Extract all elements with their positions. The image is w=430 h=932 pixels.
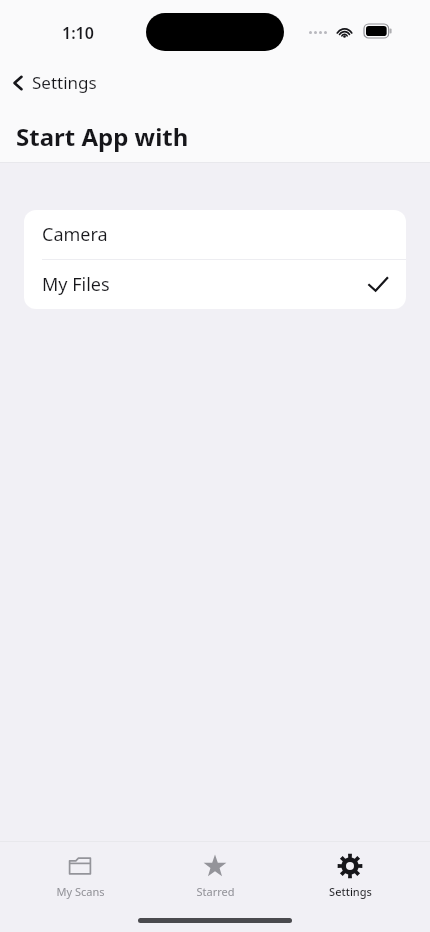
- button[interactable]: Camera: [24, 210, 406, 259]
- button[interactable]: Settings: [295, 849, 405, 903]
- staticText: My Scans: [56, 884, 105, 899]
- button[interactable]: My Scans: [25, 849, 135, 903]
- staticText: Start App with: [16, 120, 189, 153]
- staticText: 1:10: [62, 22, 94, 44]
- staticText: Starred: [196, 884, 235, 899]
- staticText: My Files: [42, 272, 110, 297]
- button[interactable]: My Files: [24, 260, 406, 309]
- button[interactable]: Settings: [6, 68, 101, 97]
- button[interactable]: Starred: [160, 849, 270, 903]
- staticText: Settings: [329, 884, 372, 899]
- staticText: Settings: [32, 71, 97, 94]
- staticText: Camera: [42, 222, 108, 247]
